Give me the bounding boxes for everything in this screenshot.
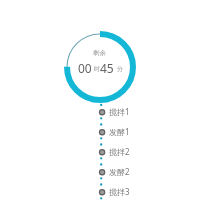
staticText: 时 (94, 65, 100, 73)
button[interactable]: 搅拌2 (95, 142, 155, 162)
button[interactable]: 搅拌3 (95, 182, 155, 200)
staticText: 搅拌1 (109, 106, 130, 117)
staticText: 分 (117, 65, 123, 73)
button[interactable]: 发酵2 (95, 162, 155, 182)
staticText: 搅拌3 (109, 186, 130, 197)
staticText: 发酵1 (109, 126, 130, 137)
staticText: 剩余 (93, 49, 107, 57)
staticText: 00 (78, 60, 92, 74)
staticText: 搅拌2 (109, 146, 130, 157)
staticText: 发酵2 (109, 166, 130, 177)
button[interactable]: 剩余时间 00 时 45 分 (64, 31, 136, 103)
button[interactable]: 发酵1 (95, 122, 155, 142)
staticText: 45 (100, 60, 114, 74)
button[interactable]: 搅拌1 (95, 102, 155, 122)
